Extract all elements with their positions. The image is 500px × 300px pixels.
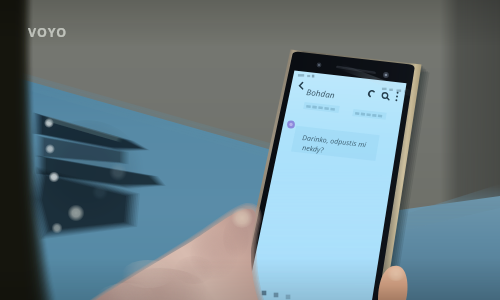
button[interactable]: Video player bbox=[0, 0, 500, 300]
